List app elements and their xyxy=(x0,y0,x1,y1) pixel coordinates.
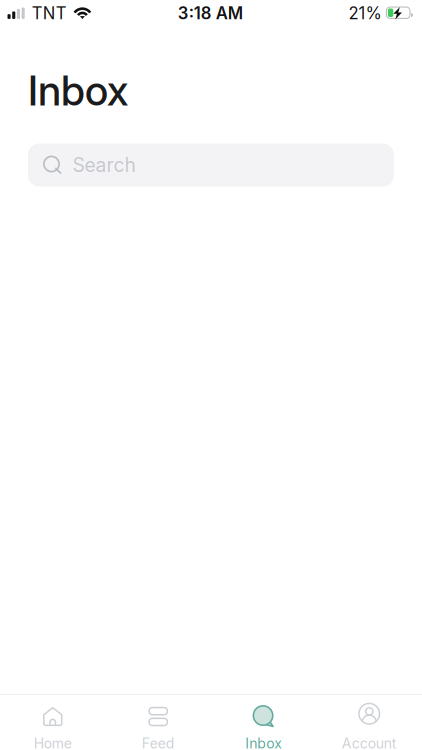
button[interactable]: Search xyxy=(28,143,394,186)
staticText: Feed xyxy=(142,735,175,750)
staticText: Search xyxy=(72,153,135,177)
staticText: 3:18 AM xyxy=(178,3,243,23)
button[interactable]: Home xyxy=(0,706,105,750)
staticText: Account xyxy=(342,735,397,750)
staticText: Inbox xyxy=(245,735,282,750)
staticText: 21% xyxy=(348,3,381,23)
staticText: Inbox xyxy=(28,65,128,115)
staticText: TNT xyxy=(32,3,67,23)
button[interactable]: Inbox xyxy=(211,706,316,750)
staticText: Home xyxy=(34,735,72,750)
button[interactable]: Feed xyxy=(105,706,211,750)
button[interactable]: Account xyxy=(316,706,422,750)
